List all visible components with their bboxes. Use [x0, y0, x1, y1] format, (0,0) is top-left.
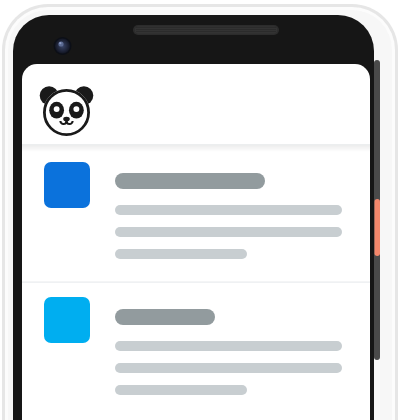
button[interactable]: App logo	[42, 88, 92, 138]
button[interactable]	[22, 146, 370, 281]
button[interactable]	[22, 284, 370, 420]
button[interactable]: Power button	[370, 197, 382, 258]
